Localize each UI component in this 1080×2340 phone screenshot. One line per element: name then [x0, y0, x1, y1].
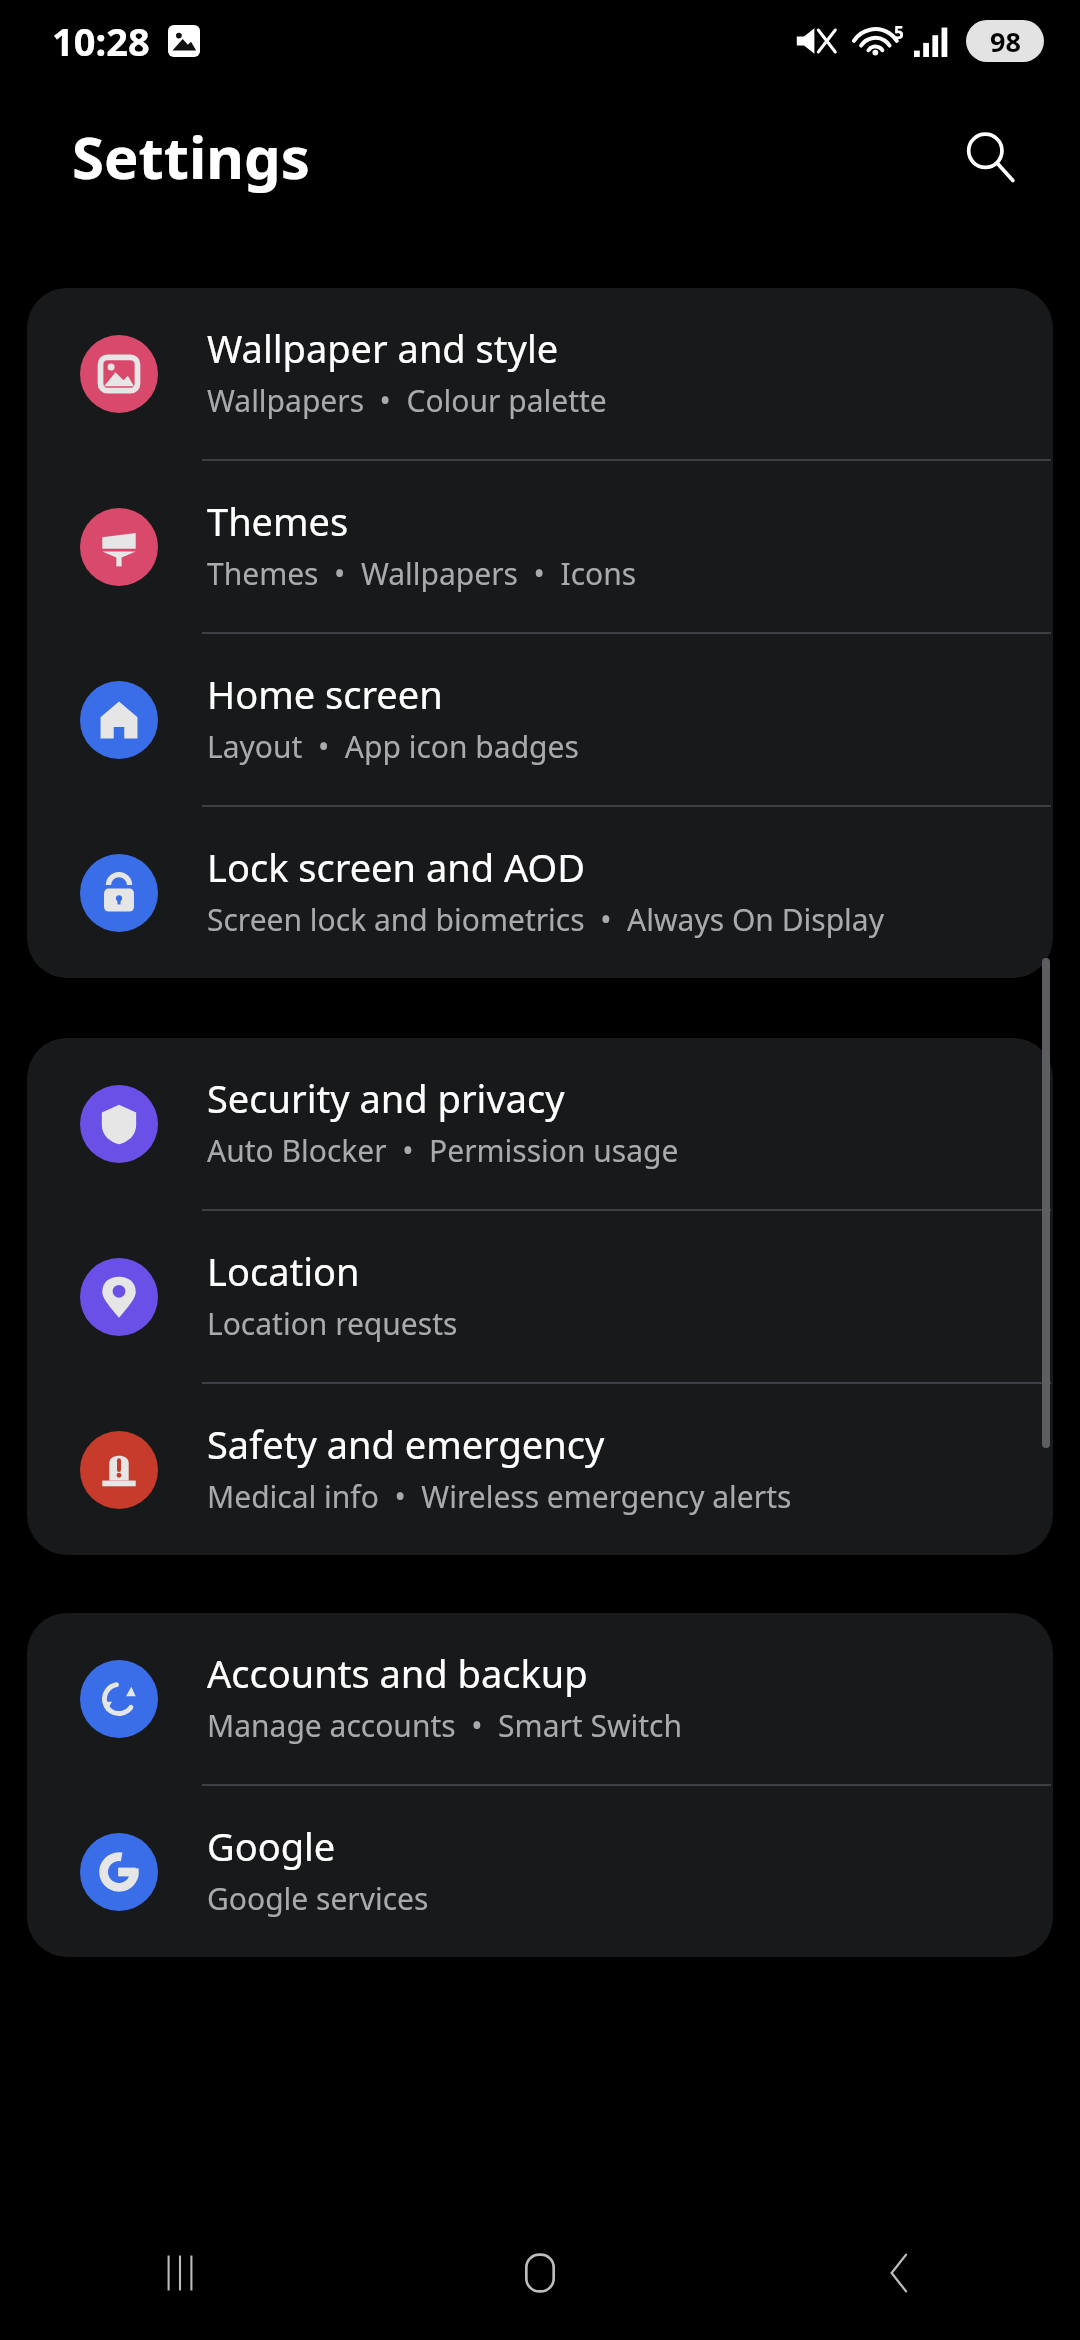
button[interactable]: Location: [27, 1211, 1053, 1384]
staticText: Home screen: [207, 668, 443, 720]
button[interactable]: Search: [942, 108, 1038, 204]
staticText: Google services: [207, 1878, 429, 1919]
staticText: Themes: [207, 495, 349, 547]
staticText: Google: [207, 1820, 336, 1872]
staticText: Screen lock and biometrics • Always On D…: [207, 899, 884, 940]
staticText: Safety and emergency: [207, 1418, 605, 1470]
staticText: Manage accounts • Smart Switch: [207, 1705, 683, 1746]
staticText: Location: [207, 1245, 360, 1297]
staticText: 10:28: [52, 15, 150, 67]
staticText: Location requests: [207, 1303, 458, 1344]
staticText: 98: [990, 23, 1021, 60]
staticText: Wallpapers • Colour palette: [207, 380, 607, 421]
button[interactable]: Recent apps: [0, 2205, 360, 2340]
staticText: Security and privacy: [207, 1072, 565, 1124]
staticText: Auto Blocker • Permission usage: [207, 1130, 679, 1171]
button[interactable]: Lock screen and AOD: [27, 807, 1053, 978]
staticText: 5: [894, 21, 904, 44]
staticText: Themes • Wallpapers • Icons: [207, 553, 637, 594]
button[interactable]: Home: [360, 2205, 720, 2340]
button[interactable]: Safety and emergency: [27, 1384, 1053, 1555]
button[interactable]: Back: [720, 2205, 1080, 2340]
staticText: Medical info • Wireless emergency alerts: [207, 1476, 792, 1517]
staticText: Accounts and backup: [207, 1647, 588, 1699]
button[interactable]: Security and privacy: [27, 1038, 1053, 1211]
button[interactable]: Wallpaper and style: [27, 288, 1053, 461]
button[interactable]: Accounts and backup: [27, 1613, 1053, 1786]
staticText: Lock screen and AOD: [207, 841, 585, 893]
staticText: Wallpaper and style: [207, 322, 559, 374]
button[interactable]: Home screen: [27, 634, 1053, 807]
staticText: Settings: [72, 117, 310, 196]
button[interactable]: Google: [27, 1786, 1053, 1957]
button[interactable]: Themes: [27, 461, 1053, 634]
staticText: Layout • App icon badges: [207, 726, 579, 767]
